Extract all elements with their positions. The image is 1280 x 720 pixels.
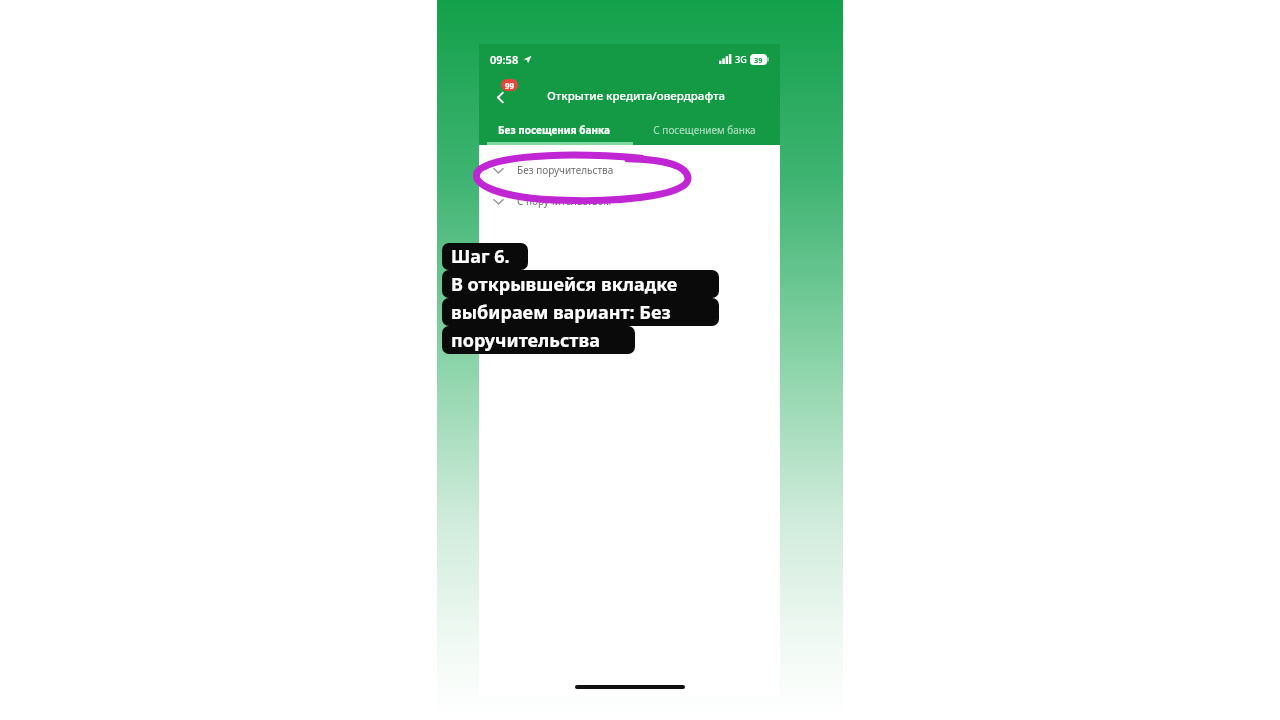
staticText: Без посещения банка <box>498 123 610 137</box>
button[interactable]: Без поручительства <box>479 162 780 178</box>
button[interactable]: Назад <box>485 77 519 111</box>
staticText: 99 <box>505 80 515 91</box>
button[interactable]: С посещением банка <box>629 115 780 145</box>
staticText: 39 <box>754 55 763 65</box>
staticText: С посещением банка <box>653 123 756 137</box>
staticText: 3G <box>735 53 747 65</box>
staticText: С поручительством <box>517 194 612 208</box>
staticText: Шаг 6. <box>451 244 510 269</box>
staticText: Открытие кредита/овердрафта <box>547 88 726 104</box>
button[interactable]: С поручительством <box>479 193 780 209</box>
staticText: В открывшейся вкладке <box>451 272 678 297</box>
staticText: Без поручительства <box>517 163 614 177</box>
staticText: выбираем вариант: Без <box>451 300 671 325</box>
staticText: 09:58 <box>490 52 519 67</box>
staticText: поручительства <box>451 328 600 353</box>
button[interactable]: Без посещения банка <box>479 115 629 145</box>
